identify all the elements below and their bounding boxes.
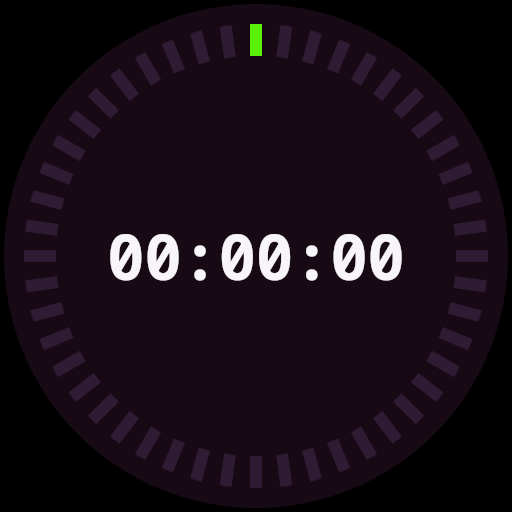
button[interactable]: Stopwatch dial — [0, 0, 512, 512]
button[interactable]: 00:00:00 — [107, 214, 405, 298]
